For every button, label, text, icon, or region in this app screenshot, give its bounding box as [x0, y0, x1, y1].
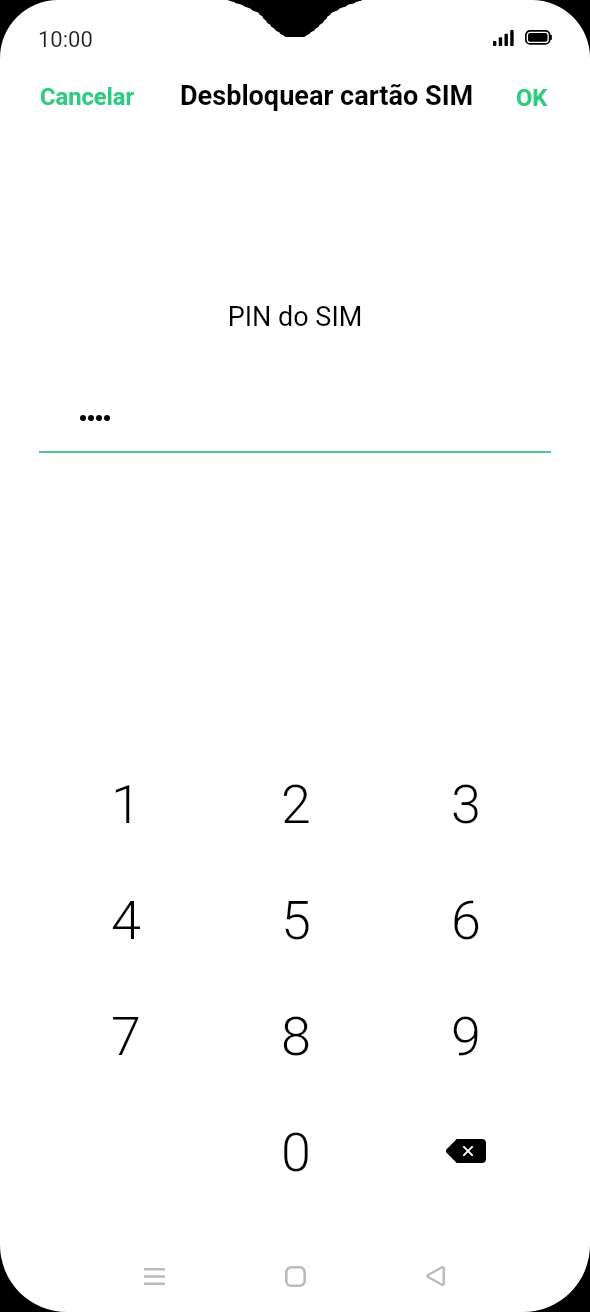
button[interactable]: 4	[40, 862, 211, 978]
button[interactable]: Backspace	[381, 1094, 551, 1210]
staticText: 8	[281, 1005, 311, 1068]
button[interactable]: 5	[211, 862, 381, 978]
staticText: 0	[281, 1121, 311, 1184]
staticText: 6	[451, 889, 481, 952]
staticText: 1	[111, 773, 141, 836]
staticText: 3	[451, 773, 481, 836]
staticText: Cancelar	[40, 83, 135, 111]
staticText: 7	[111, 1005, 141, 1068]
button[interactable]: 9	[381, 978, 551, 1094]
button[interactable]: 6	[381, 862, 551, 978]
button[interactable]: Home	[260, 1241, 330, 1311]
staticText: 2	[281, 773, 311, 836]
button[interactable]: Back	[400, 1241, 470, 1311]
staticText: 9	[451, 1005, 481, 1068]
button[interactable]: Recent apps	[119, 1241, 189, 1311]
button[interactable]: Cancelar	[0, 71, 159, 138]
button[interactable]: 1	[40, 746, 211, 862]
button[interactable]: 0	[211, 1094, 381, 1210]
staticText: PIN do SIM	[0, 301, 590, 333]
staticText: 5	[281, 889, 311, 952]
staticText: Desbloquear cartão SIM	[180, 80, 474, 112]
other: Backspace	[445, 1139, 486, 1163]
staticText: 10:00	[38, 27, 93, 53]
button[interactable]: 7	[40, 978, 211, 1094]
button[interactable]: 2	[211, 746, 381, 862]
button[interactable]: OK	[492, 72, 590, 138]
button[interactable]: 3	[381, 746, 551, 862]
staticText: 4	[111, 889, 141, 952]
staticText: OK	[516, 84, 548, 112]
button[interactable]: 8	[211, 978, 381, 1094]
